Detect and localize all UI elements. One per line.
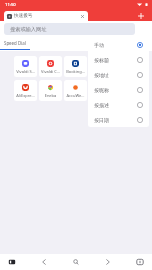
button[interactable]: 手动 (88, 37, 149, 52)
button[interactable]: 按标题 (88, 52, 149, 67)
button[interactable]: AliExpre… (14, 80, 37, 101)
button[interactable]: New tab (135, 10, 146, 21)
button[interactable]: Panels (5, 255, 19, 269)
staticText: AliExpre… (14, 93, 37, 98)
button[interactable]: 按日期 (88, 112, 149, 127)
staticText: 11:50 (5, 2, 16, 8)
button[interactable]: Vivaldi C… (39, 56, 62, 77)
button[interactable]: Scan QR code (137, 44, 149, 51)
button[interactable]: Tabs (133, 255, 147, 269)
button[interactable]: 搜索或输入网址 (4, 23, 135, 35)
staticText: Speed Dial (4, 40, 26, 46)
staticText: 按描述 (94, 102, 109, 108)
button[interactable]: 快速拨号 (4, 11, 88, 21)
button[interactable]: 按地址 (88, 67, 149, 82)
staticText: 快速拨号 (14, 13, 33, 19)
button[interactable]: Search (69, 255, 83, 269)
staticText: 手动 (94, 42, 104, 48)
button[interactable]: Vivaldi S… (14, 56, 37, 77)
staticText: AccuWe… (64, 93, 87, 98)
staticText: 按日期 (94, 117, 109, 123)
staticText: 按标题 (94, 57, 109, 63)
button[interactable]: 按描述 (88, 97, 149, 112)
staticText: 按地址 (94, 72, 109, 78)
staticText: Vivaldi S… (14, 69, 37, 74)
button[interactable]: Booking… (64, 56, 87, 77)
button[interactable]: Back (37, 255, 51, 269)
button[interactable]: AccuWe… (64, 80, 87, 101)
staticText: 搜索或输入网址 (10, 26, 47, 33)
button[interactable]: Forward (101, 255, 115, 269)
button[interactable]: 按昵称 (88, 82, 149, 97)
button[interactable]: Speed Dial (0, 40, 30, 51)
staticText: 按昵称 (94, 87, 109, 93)
staticText: Booking… (64, 69, 87, 74)
staticText: Vivaldi C… (39, 69, 62, 74)
button[interactable]: Close tab (79, 13, 86, 20)
staticText: Eneba (39, 93, 62, 98)
button[interactable]: Eneba (39, 80, 62, 101)
